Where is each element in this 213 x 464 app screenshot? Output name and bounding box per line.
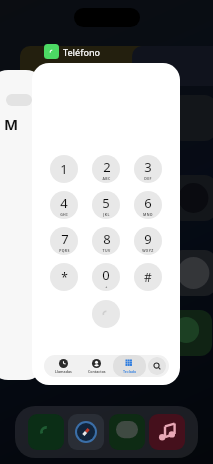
staticText: Teléfono <box>63 46 101 58</box>
staticText: 5 <box>102 194 110 212</box>
staticText: Teclado <box>123 369 137 374</box>
button[interactable]: 6 <box>134 191 162 219</box>
staticText: 4 <box>60 194 68 212</box>
staticText: 2 <box>103 158 111 176</box>
staticText: 1 <box>60 160 68 178</box>
button[interactable]: 3 <box>134 155 162 183</box>
button[interactable]: # <box>134 263 162 291</box>
staticText: * <box>61 269 68 285</box>
button[interactable]: Teclado <box>113 355 146 377</box>
button[interactable]: Buscar <box>148 357 166 375</box>
staticText: GHI <box>60 212 68 217</box>
staticText: # <box>144 269 152 285</box>
button[interactable]: 4 <box>50 191 78 219</box>
staticText: 3 <box>144 158 152 176</box>
button[interactable]: Contactos <box>80 355 113 377</box>
button[interactable]: Llamadas <box>47 355 80 377</box>
staticText: JKL <box>103 212 110 217</box>
button[interactable]: App <box>109 414 145 450</box>
button[interactable]: 1 <box>50 155 78 183</box>
button[interactable]: 7 <box>50 227 78 255</box>
staticText: MNO <box>143 212 153 217</box>
button[interactable]: 2 <box>92 155 120 183</box>
button[interactable]: Teléfono <box>44 44 101 59</box>
staticText: TUV <box>102 248 111 253</box>
staticText: + <box>105 284 108 289</box>
button[interactable]: 0 <box>92 263 120 291</box>
button[interactable]: App <box>68 414 104 450</box>
staticText: Contactos <box>88 369 106 374</box>
button[interactable]: Llamar <box>92 300 120 328</box>
button[interactable]: App <box>149 414 185 450</box>
button[interactable]: * <box>50 263 78 291</box>
button[interactable]: 9 <box>134 227 162 255</box>
staticText: WXYZ <box>142 248 154 253</box>
staticText: 8 <box>103 230 111 248</box>
staticText: Llamadas <box>55 369 72 374</box>
staticText: M <box>4 114 19 134</box>
staticText: 7 <box>61 230 69 248</box>
staticText: 9 <box>144 230 152 248</box>
staticText: PQRS <box>59 248 70 253</box>
button[interactable]: App <box>28 414 64 450</box>
button[interactable]: 8 <box>92 227 120 255</box>
button[interactable]: 5 <box>92 191 120 219</box>
staticText: 6 <box>144 194 152 212</box>
staticText: ABC <box>102 176 111 181</box>
staticText: 0 <box>102 266 110 284</box>
staticText: DEF <box>144 176 152 181</box>
button[interactable]: M <box>0 70 44 380</box>
